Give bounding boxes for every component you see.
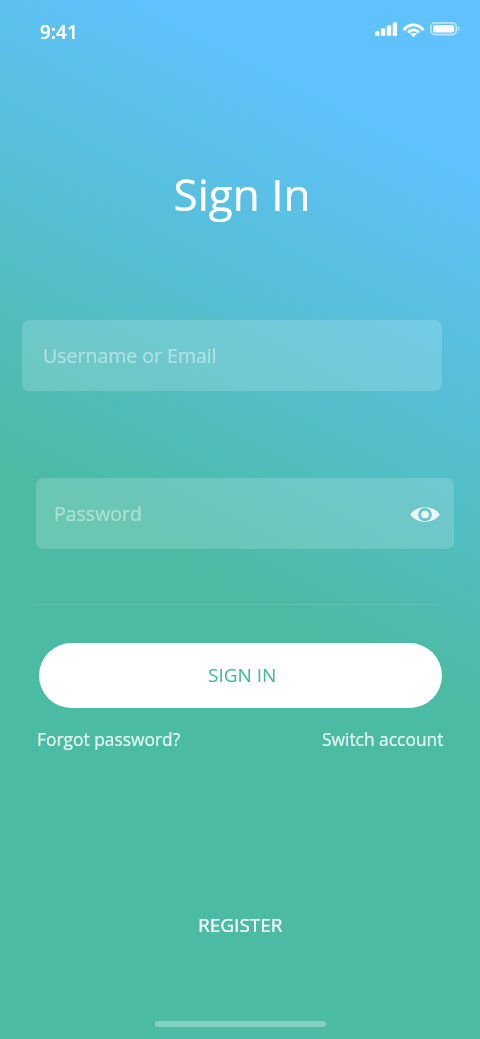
button[interactable]: REGISTER (188, 902, 293, 948)
staticText: Switch account (322, 727, 444, 751)
staticText: REGISTER (198, 912, 283, 938)
button[interactable]: Forgot password? (37, 723, 181, 755)
staticText: Forgot password? (37, 727, 181, 751)
staticText: Sign In (2, 164, 480, 224)
staticText: 9:41 (40, 19, 78, 45)
staticText: SIGN IN (208, 662, 277, 688)
button[interactable]: SIGN IN (39, 643, 442, 708)
button[interactable]: Switch account (322, 723, 444, 755)
staticText: Username or Email (43, 342, 217, 369)
button[interactable]: Show password (407, 496, 443, 532)
button[interactable]: Username or Email (22, 320, 442, 391)
staticText: Password (54, 500, 142, 527)
button[interactable]: Password (36, 478, 454, 549)
